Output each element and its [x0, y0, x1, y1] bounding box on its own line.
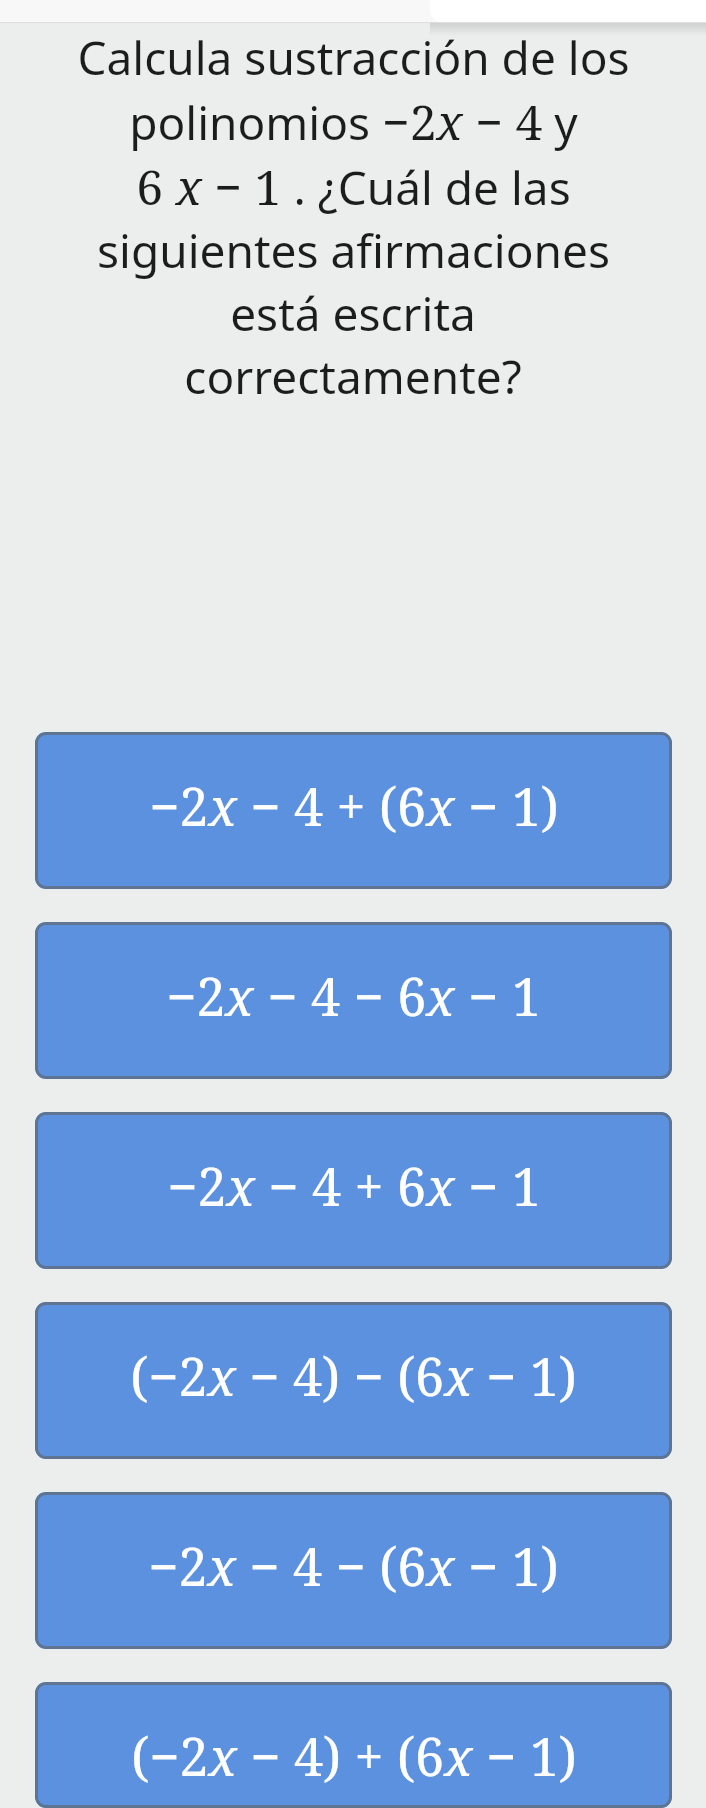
button[interactable]: −2x − 4 − (6x − 1) [35, 1492, 672, 1649]
button[interactable]: (−2x − 4) + (6x − 1) [35, 1682, 672, 1808]
staticText: 6 x − 1 . ¿Cuál de las [136, 154, 571, 219]
staticText: −2x − 4 − 6x − 1 [166, 960, 541, 1031]
staticText: está escrita [230, 282, 476, 345]
button[interactable]: −2x − 4 + 6x − 1 [35, 1112, 672, 1269]
staticText: −2x − 4 + (6x − 1) [149, 770, 559, 841]
staticText: siguientes afirmaciones [97, 219, 610, 282]
staticText: polinomios −2x − 4 y [129, 89, 578, 154]
staticText: Calcula sustracción de los [77, 26, 630, 89]
button[interactable]: −2x − 4 + (6x − 1) [35, 732, 672, 889]
staticText: −2x − 4 − (6x − 1) [148, 1530, 559, 1601]
button[interactable]: (−2x − 4) − (6x − 1) [35, 1302, 672, 1459]
staticText: −2x − 4 + 6x − 1 [167, 1150, 541, 1221]
staticText: correctamente? [184, 345, 522, 408]
button[interactable]: −2x − 4 − 6x − 1 [35, 922, 672, 1079]
staticText: (−2x − 4) − (6x − 1) [130, 1340, 577, 1411]
staticText: (−2x − 4) + (6x − 1) [131, 1720, 577, 1791]
